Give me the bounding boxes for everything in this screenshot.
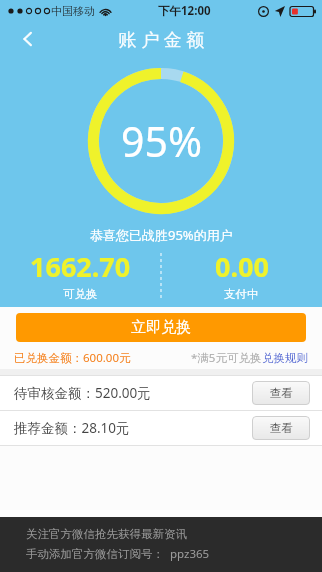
button[interactable]: Back bbox=[8, 22, 48, 56]
staticText: *满5元可兑换 bbox=[191, 350, 262, 366]
staticText: 可兑换 bbox=[63, 287, 98, 301]
button[interactable]: 兑换规则 bbox=[262, 351, 308, 365]
staticText: 兑换规则 bbox=[262, 351, 308, 365]
staticText: 推荐金额：28.10元 bbox=[14, 419, 130, 437]
staticText: 已兑换金额：600.00元 bbox=[14, 350, 131, 366]
staticText: 手动添加官方微信订阅号： ppz365 bbox=[26, 546, 210, 562]
staticText: 查看 bbox=[270, 421, 293, 435]
staticText: 恭喜您已战胜95%的用户 bbox=[90, 226, 233, 244]
staticText: 下午12:00 bbox=[158, 3, 211, 19]
button[interactable]: 查看 bbox=[252, 381, 310, 405]
staticText: 95% bbox=[121, 113, 202, 169]
staticText: 账 户 金 额 bbox=[118, 27, 205, 52]
button[interactable]: 查看 bbox=[252, 416, 310, 440]
staticText: 立即兑换 bbox=[131, 318, 191, 337]
staticText: 待审核金额：520.00元 bbox=[14, 384, 151, 402]
staticText: 0.00 bbox=[215, 248, 269, 285]
staticText: 1662.70 bbox=[30, 248, 131, 285]
staticText: 中国移动 bbox=[51, 4, 95, 18]
staticText: 支付中 bbox=[224, 287, 259, 301]
button[interactable]: 立即兑换 bbox=[16, 313, 306, 342]
staticText: 关注官方微信抢先获得最新资讯 bbox=[26, 527, 187, 541]
staticText: 查看 bbox=[270, 386, 293, 400]
